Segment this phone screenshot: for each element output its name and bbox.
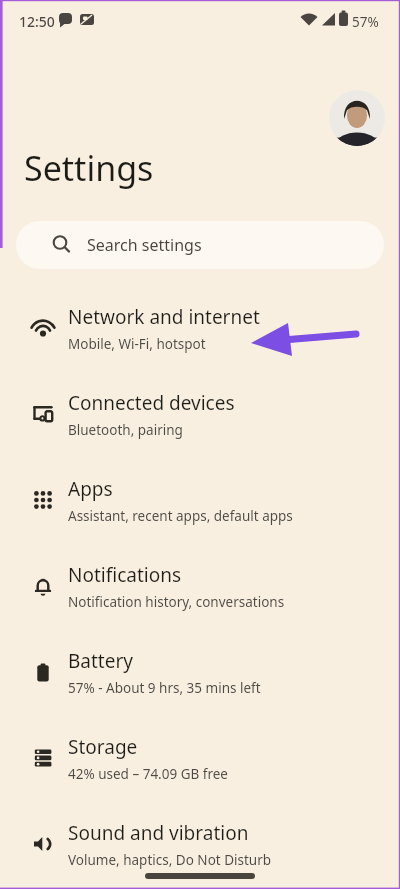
staticText: Mobile, Wi-Fi, hotspot <box>68 335 206 353</box>
button[interactable]: Network and internet <box>0 285 400 371</box>
staticText: Sound and vibration <box>68 820 249 846</box>
staticText: 57% <box>352 13 379 31</box>
staticText: Network and internet <box>68 304 260 330</box>
button[interactable]: Sound and vibration <box>0 801 400 887</box>
staticText: Assistant, recent apps, default apps <box>68 507 293 525</box>
button[interactable]: Apps <box>0 457 400 543</box>
staticText: Notifications <box>68 562 182 588</box>
staticText: Notification history, conversations <box>68 593 285 611</box>
button[interactable]: Search settings <box>16 221 384 269</box>
staticText: 42% used – 74.09 GB free <box>68 765 228 783</box>
button[interactable]: Storage <box>0 715 400 801</box>
staticText: 57% - About 9 hrs, 35 mins left <box>68 679 261 697</box>
button[interactable] <box>329 90 385 146</box>
button[interactable]: Connected devices <box>0 371 400 457</box>
staticText: Settings <box>24 145 154 191</box>
staticText: Search settings <box>87 234 202 256</box>
button[interactable]: Notifications <box>0 543 400 629</box>
staticText: 12:50 <box>19 12 55 31</box>
staticText: Connected devices <box>68 390 235 416</box>
staticText: Bluetooth, pairing <box>68 421 183 439</box>
staticText: Storage <box>68 734 138 760</box>
button[interactable]: Battery <box>0 629 400 715</box>
staticText: Apps <box>68 476 113 502</box>
staticText: Battery <box>68 648 133 674</box>
staticText: Volume, haptics, Do Not Disturb <box>68 851 272 869</box>
